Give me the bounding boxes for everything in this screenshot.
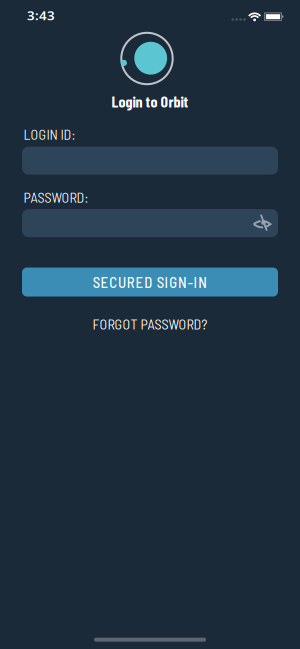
staticText: 3:43 <box>27 6 55 24</box>
staticText: Login to Orbit <box>111 92 188 111</box>
button[interactable]: Login ID <box>22 147 278 175</box>
button[interactable]: SECURED SIGN-IN <box>22 268 278 297</box>
staticText: FORGOT PASSWORD? <box>92 315 207 332</box>
staticText: SECURED SIGN-IN <box>93 273 207 291</box>
staticText: LOGIN ID: <box>23 125 75 142</box>
staticText: PASSWORD: <box>23 188 88 205</box>
button[interactable]: Show password <box>249 213 273 233</box>
button[interactable]: Password <box>22 209 278 237</box>
button[interactable]: FORGOT PASSWORD? <box>92 315 207 332</box>
